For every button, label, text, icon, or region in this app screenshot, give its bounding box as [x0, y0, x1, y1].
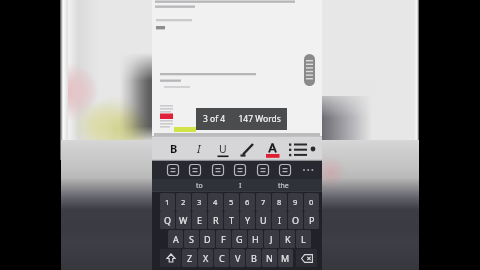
staticText: T	[229, 214, 235, 226]
button[interactable]: I	[227, 179, 253, 192]
staticText: 6	[245, 197, 250, 207]
button[interactable]: 9	[288, 193, 303, 211]
button[interactable]: N	[262, 249, 277, 267]
button[interactable]: J	[264, 230, 279, 248]
button[interactable]: F	[216, 230, 231, 248]
button[interactable]: Scroll handle	[304, 54, 315, 86]
staticText: 5	[229, 197, 234, 207]
button[interactable]: H	[248, 230, 263, 248]
button[interactable]: 8	[272, 193, 287, 211]
staticText: C	[219, 252, 225, 264]
button[interactable]: G	[232, 230, 247, 248]
staticText: 0	[309, 197, 314, 207]
button[interactable]: Underline	[214, 136, 231, 161]
staticText: 8	[277, 197, 282, 207]
button[interactable]: 4	[208, 193, 223, 211]
staticText: Z	[187, 252, 193, 264]
button[interactable]: Q	[160, 211, 175, 229]
button[interactable]: R	[208, 211, 223, 229]
staticText: M	[281, 252, 290, 264]
staticText: A	[173, 233, 179, 245]
staticText: Q	[164, 214, 172, 226]
staticText: H	[252, 233, 259, 245]
staticText: G	[236, 233, 243, 245]
staticText: 3	[197, 197, 202, 207]
button[interactable]: More	[307, 136, 321, 161]
button[interactable]: Y	[240, 211, 255, 229]
staticText: 9	[293, 197, 298, 207]
button[interactable]: W	[176, 211, 191, 229]
button[interactable]: Z	[182, 249, 197, 267]
button[interactable]: Highlight	[239, 136, 256, 161]
staticText: L	[301, 233, 306, 245]
staticText: O	[292, 214, 300, 226]
button[interactable]: M	[278, 249, 293, 267]
button[interactable]: S	[184, 230, 199, 248]
staticText: B	[170, 141, 178, 156]
button[interactable]: 3	[192, 193, 207, 211]
staticText: 2	[181, 197, 186, 207]
button[interactable]: Bulleted list	[285, 136, 309, 161]
button[interactable]: Bold	[165, 136, 182, 161]
staticText: I	[197, 141, 201, 156]
staticText: U	[260, 214, 267, 226]
staticText: 3 of 4 147 Words	[203, 113, 281, 125]
button[interactable]: C	[214, 249, 229, 267]
button[interactable]: V	[230, 249, 245, 267]
button[interactable]: 2	[176, 193, 191, 211]
button[interactable]: 6	[240, 193, 255, 211]
button[interactable]: P	[304, 211, 319, 229]
staticText: 4	[213, 197, 218, 207]
button[interactable]: B	[246, 249, 261, 267]
button[interactable]: 7	[256, 193, 271, 211]
button[interactable]: U	[256, 211, 271, 229]
button[interactable]: 3 of 4 147 Words	[196, 108, 287, 130]
staticText: J	[270, 233, 273, 245]
staticText: P	[309, 214, 315, 226]
staticText: F	[221, 233, 226, 245]
button[interactable]: Text colour	[263, 136, 281, 161]
button[interactable]: K	[280, 230, 295, 248]
staticText: U	[219, 142, 227, 156]
button[interactable]: 5	[224, 193, 239, 211]
button[interactable]: A	[168, 230, 183, 248]
staticText: I	[239, 181, 242, 191]
button[interactable]: D	[200, 230, 215, 248]
button[interactable]: 1	[160, 193, 175, 211]
staticText: the	[278, 181, 289, 191]
staticText: to	[196, 181, 203, 191]
staticText: X	[203, 252, 209, 264]
staticText: E	[197, 214, 203, 226]
staticText: N	[266, 252, 273, 264]
button[interactable]: Italic	[190, 136, 207, 161]
button[interactable]: X	[198, 249, 213, 267]
button[interactable]: E	[192, 211, 207, 229]
button[interactable]: T	[224, 211, 239, 229]
button[interactable]: I	[272, 211, 287, 229]
button[interactable]: to	[184, 179, 214, 192]
button[interactable]: 0	[304, 193, 319, 211]
button[interactable]: the	[268, 179, 298, 192]
button[interactable]: Backspace	[296, 249, 317, 267]
button[interactable]: Shift	[160, 249, 181, 267]
staticText: K	[285, 233, 291, 245]
staticText: I	[278, 214, 282, 226]
staticText: V	[235, 252, 241, 264]
staticText: R	[213, 214, 219, 226]
staticText: B	[251, 252, 257, 264]
staticText: W	[179, 214, 188, 226]
staticText: S	[189, 233, 194, 245]
button[interactable]: L	[296, 230, 311, 248]
staticText: 7	[261, 197, 266, 207]
staticText: D	[204, 233, 211, 245]
staticText: 1	[165, 197, 170, 207]
staticText: Y	[245, 214, 251, 226]
button[interactable]: O	[288, 211, 303, 229]
